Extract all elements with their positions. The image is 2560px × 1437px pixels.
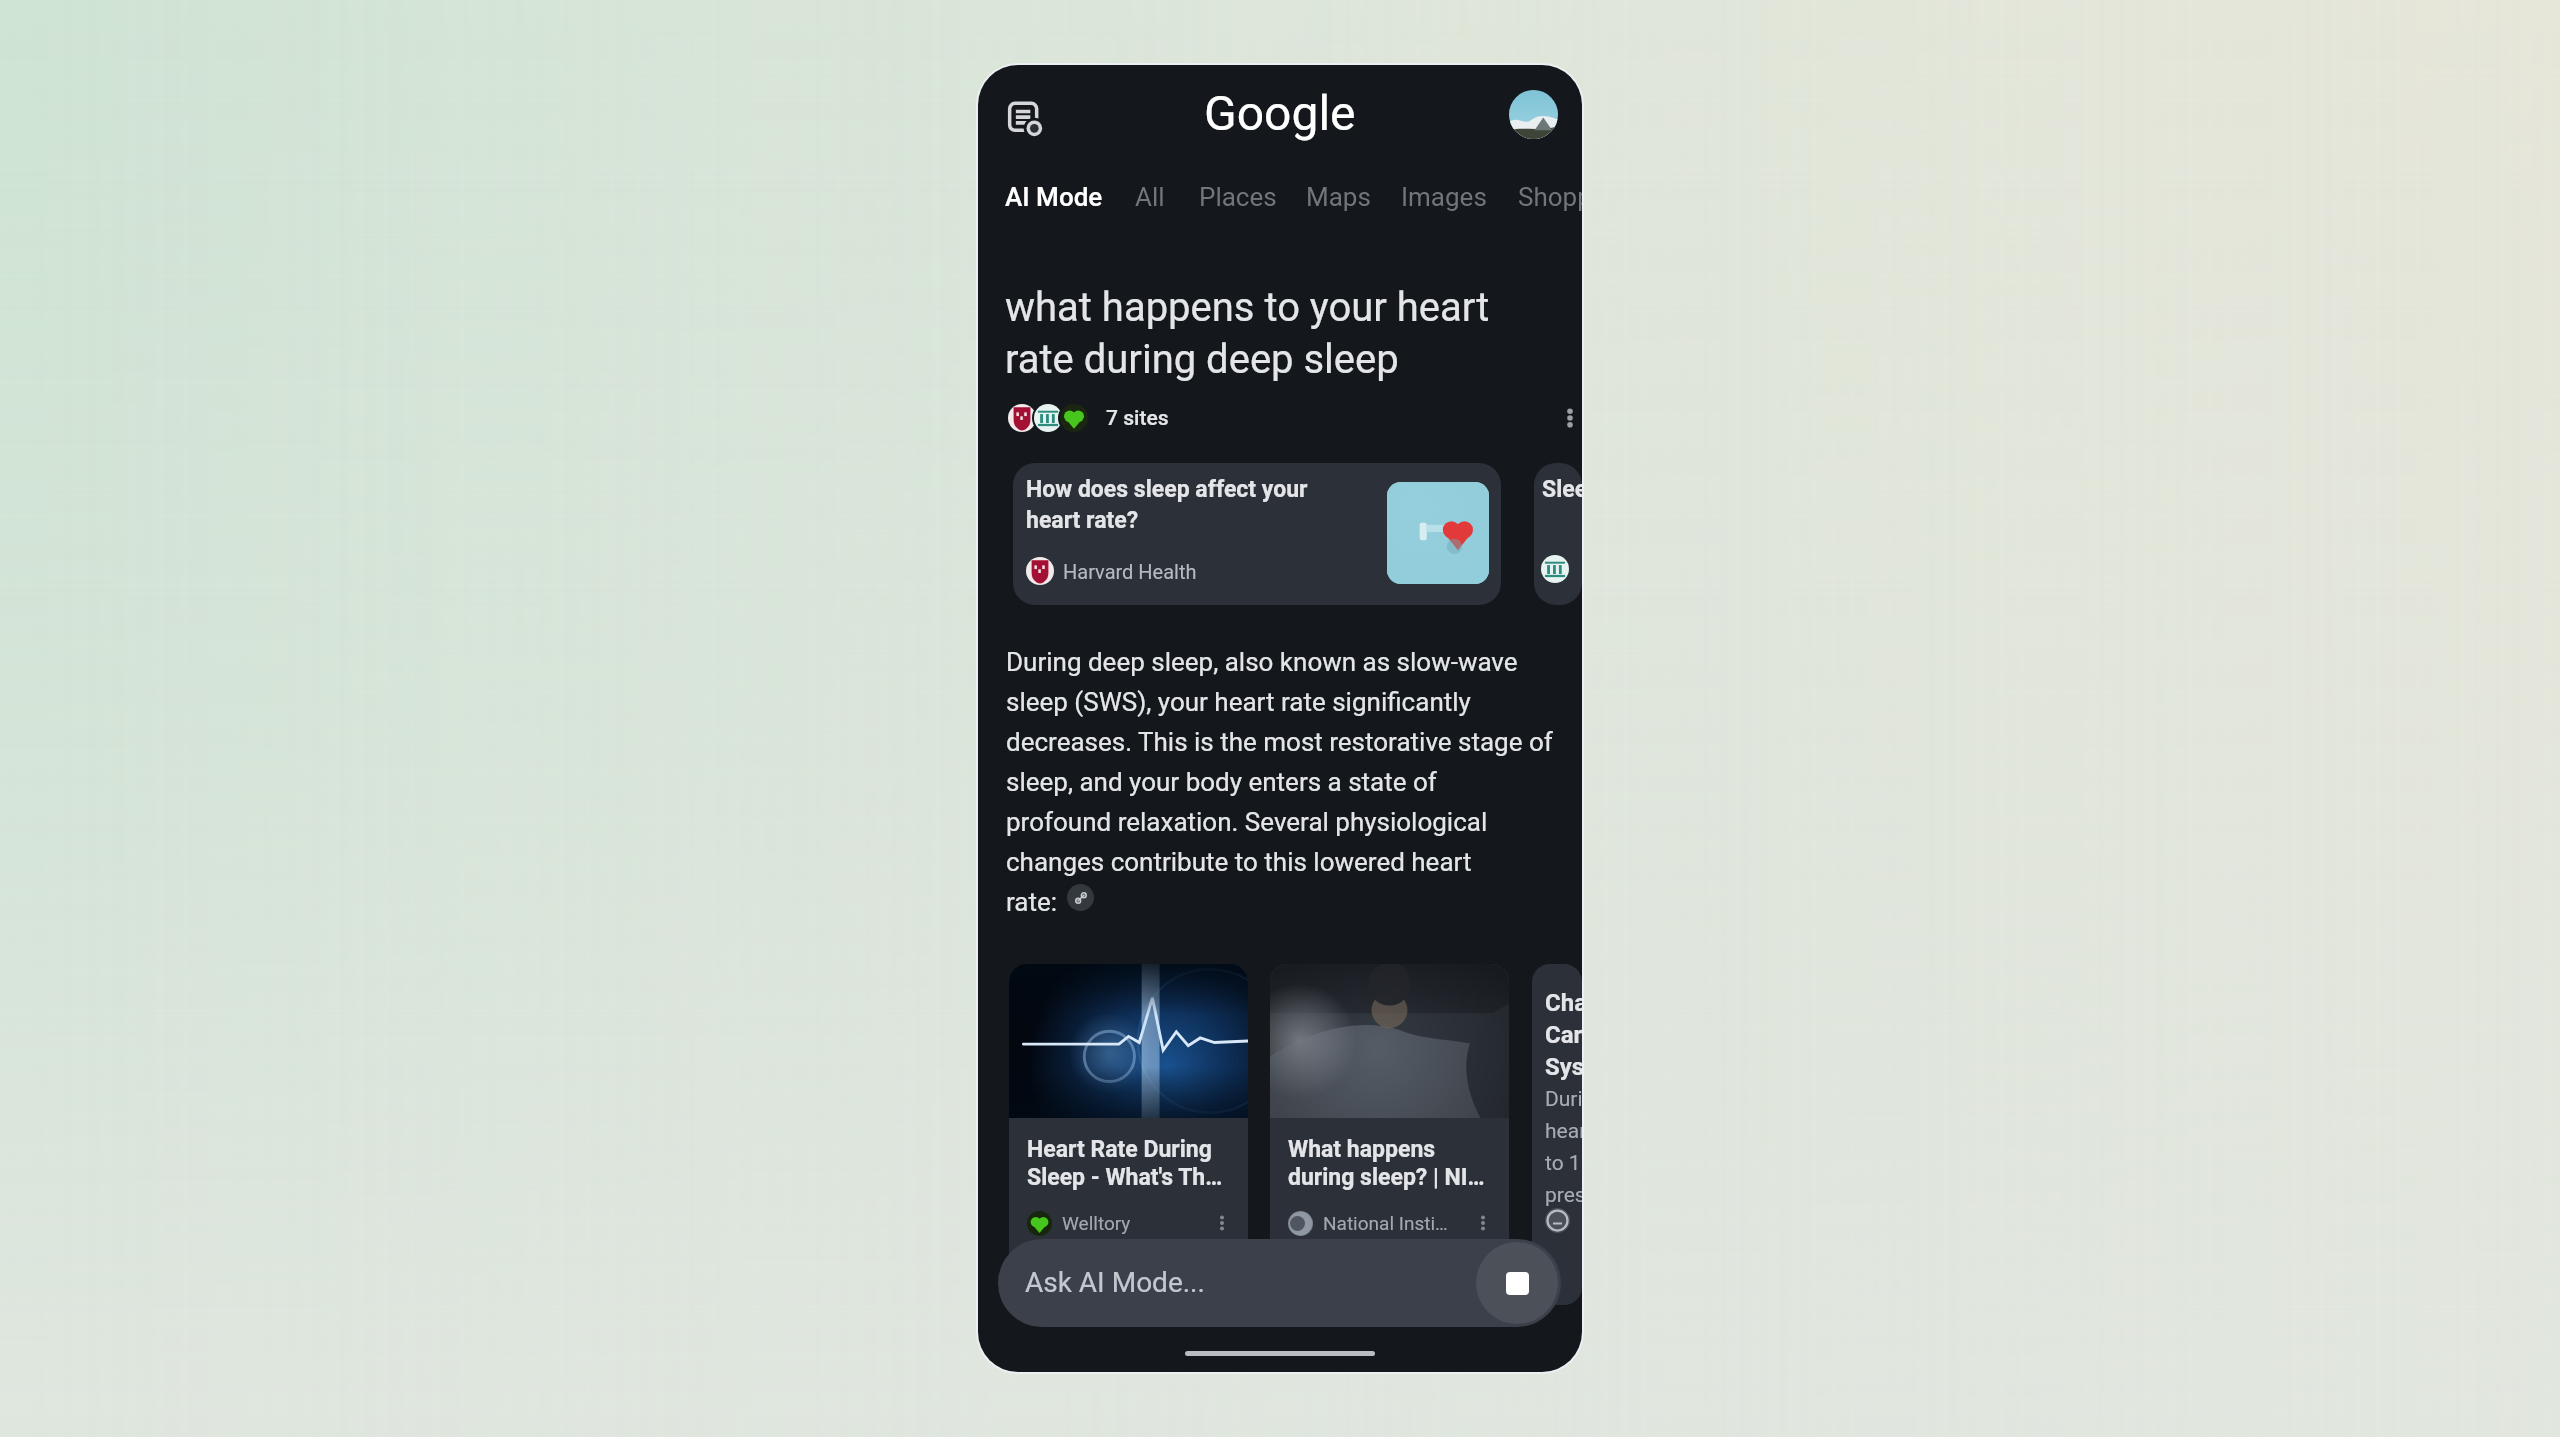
staticText: Duri hear to 1 pres — [1545, 1087, 1582, 1207]
button[interactable]: Ask AI Mode... — [998, 1239, 1561, 1327]
button[interactable]: More — [1472, 1212, 1494, 1234]
staticText: All — [1135, 182, 1165, 212]
button[interactable]: Stop — [1476, 1242, 1558, 1324]
button[interactable]: AI Mode — [994, 168, 1114, 226]
button[interactable]: Maps — [1295, 168, 1382, 226]
button[interactable]: Images — [1390, 168, 1498, 226]
staticText: Harvard Health — [1063, 560, 1197, 583]
button[interactable]: How does sleep affect your heart rate? — [1013, 463, 1501, 605]
button[interactable]: Places — [1188, 168, 1288, 226]
staticText: AI Mode — [1005, 182, 1103, 212]
staticText: what happens to your heart rate during d… — [1005, 284, 1490, 383]
staticText: What happens during sleep? | NI… — [1288, 1136, 1498, 1191]
staticText: National Insti… — [1323, 1212, 1448, 1234]
staticText: Welltory — [1062, 1212, 1131, 1234]
staticText: 7 sites — [1106, 406, 1169, 431]
staticText: Ask AI Mode... — [1025, 1266, 1205, 1299]
button[interactable]: Account — [1509, 90, 1558, 139]
button[interactable]: More — [1211, 1212, 1233, 1234]
staticText: Places — [1199, 182, 1277, 212]
button[interactable]: More options — [1552, 402, 1582, 434]
staticText: Heart Rate During Sleep - What's Th… — [1027, 1136, 1237, 1191]
staticText: Slee — [1542, 476, 1582, 503]
button[interactable]: Cha Car Sys — [1532, 964, 1582, 1305]
button[interactable]: Shopp — [1507, 168, 1582, 226]
staticText: Cha Car Sys — [1545, 989, 1582, 1081]
button[interactable]: Sources link — [1067, 884, 1094, 911]
staticText: During deep sleep, also known as slow-wa… — [1006, 647, 1553, 917]
button[interactable]: All — [1124, 168, 1176, 226]
button[interactable]: What happens during sleep? | NI… — [1270, 964, 1509, 1305]
staticText: Google — [1204, 85, 1356, 141]
staticText: How does sleep affect your heart rate? — [1026, 476, 1308, 533]
staticText: Maps — [1306, 182, 1371, 212]
staticText: Shopp — [1518, 182, 1582, 212]
button[interactable]: Search history — [1006, 99, 1046, 139]
button[interactable]: Heart Rate During Sleep - What's Th… — [1009, 964, 1248, 1305]
staticText: Images — [1401, 182, 1487, 212]
button[interactable]: Slee — [1534, 463, 1582, 605]
